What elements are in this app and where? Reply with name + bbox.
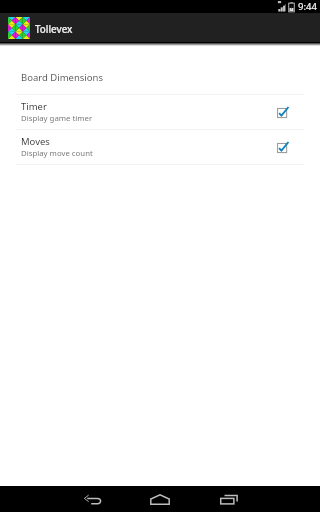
button[interactable]: Back <box>61 486 127 512</box>
staticText: Display game timer <box>21 113 93 124</box>
button[interactable]: Timer <box>0 95 320 129</box>
staticText: Moves <box>21 135 50 148</box>
button[interactable]: Recent apps <box>193 486 259 512</box>
staticText: Board Dimensions <box>21 71 103 84</box>
button[interactable]: Home <box>127 486 193 512</box>
button[interactable]: Moves <box>0 130 320 164</box>
staticText: Tollevex <box>35 23 73 36</box>
button[interactable]: Enabled checkbox, checked <box>271 102 291 122</box>
staticText: Timer <box>21 100 47 113</box>
button[interactable]: Enabled checkbox, checked <box>271 137 291 157</box>
staticText: Display move count <box>21 148 93 159</box>
staticText: 9:44 <box>298 0 317 13</box>
